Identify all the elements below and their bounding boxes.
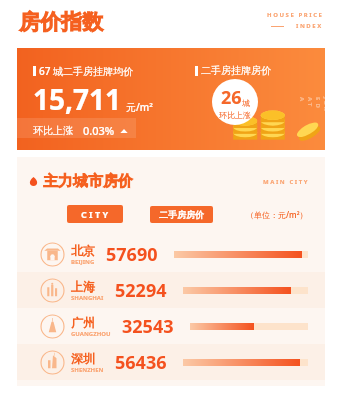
other: GUANGZHOU [40, 314, 65, 339]
staticText: GUANGZHOU [71, 330, 111, 338]
staticText: 二手房房价 [159, 209, 204, 220]
staticText: 房价指数 [19, 9, 103, 35]
staticText: 二手房挂牌房价 [201, 64, 271, 77]
other: SHANGHAI [40, 278, 65, 303]
staticText: BEIJING [71, 258, 95, 266]
staticText: （单位：元/m²） [246, 209, 308, 220]
staticText: 广州 [71, 315, 95, 330]
button[interactable]: 二手房房价 [150, 206, 213, 223]
button[interactable]: GUANGZHOU [17, 308, 325, 344]
staticText: 67 城二手房挂牌均价 [39, 64, 134, 78]
staticText: SHANGHAI [71, 294, 104, 302]
staticText: 26 [221, 85, 242, 110]
staticText: 元/m² [126, 100, 153, 114]
staticText: 环比上涨 [219, 110, 251, 120]
button[interactable]: BEIJING [17, 236, 325, 272]
staticText: 15,711 [33, 80, 122, 118]
staticText: SHENZHEN [71, 366, 104, 374]
staticText: 上海 [71, 279, 95, 294]
button[interactable]: SHANGHAI [17, 272, 325, 308]
staticText: 城 [242, 98, 250, 108]
staticText: 57690 [106, 242, 158, 267]
other: SHENZHEN [40, 350, 65, 375]
staticText: H O U S E P R I C E [267, 11, 322, 19]
button[interactable]: SHENZHEN [17, 344, 325, 380]
staticText: 52294 [115, 278, 167, 303]
staticText: 32543 [122, 314, 174, 339]
staticText: 北京 [71, 243, 95, 258]
staticText: 主力城市房价 [43, 172, 133, 191]
staticText: 0.03% [83, 123, 115, 138]
staticText: 环比上涨 [33, 124, 73, 137]
staticText: 深圳 [71, 351, 95, 366]
staticText: 56436 [115, 350, 167, 375]
other: BEIJING [40, 242, 65, 267]
staticText: A N J U K E D A T A [298, 97, 338, 111]
staticText: C I T Y [81, 208, 109, 220]
staticText: M A I N C I T Y [263, 178, 308, 186]
staticText: I N D E X [296, 22, 322, 30]
button[interactable]: C I T Y [67, 205, 123, 223]
